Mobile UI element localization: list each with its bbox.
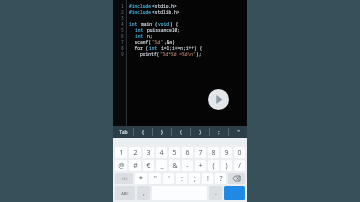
staticText: <stdio.h>: [152, 3, 177, 9]
staticText: 9: [121, 51, 124, 57]
button[interactable]: Backspace: [228, 173, 245, 184]
staticText: ': [168, 174, 170, 184]
button[interactable]: Enter: [224, 186, 245, 200]
staticText: _: [160, 161, 164, 171]
staticText: int: [129, 21, 141, 27]
staticText: #include: [129, 9, 152, 15]
button[interactable]: 1: [115, 147, 127, 158]
staticText: 6: [121, 33, 124, 39]
staticText: 1: [121, 3, 124, 9]
button[interactable]: ?: [215, 173, 226, 184]
staticText: -: [186, 161, 189, 171]
button[interactable]: ": [149, 173, 161, 184]
staticText: scanf(: [129, 39, 152, 45]
button[interactable]: ,: [137, 186, 150, 200]
button[interactable]: (: [172, 126, 190, 138]
staticText: .: [215, 188, 217, 198]
staticText: /: [238, 161, 241, 171]
button[interactable]: &: [169, 160, 180, 171]
button[interactable]: 0: [234, 147, 245, 158]
button[interactable]: :: [176, 173, 187, 184]
button[interactable]: =\<: [115, 173, 133, 184]
staticText: n;: [147, 33, 153, 39]
button[interactable]: 5: [169, 147, 180, 158]
button[interactable]: {: [134, 126, 152, 138]
staticText: Tab: [119, 129, 128, 136]
staticText: ): [199, 129, 201, 136]
button[interactable]: 3: [143, 147, 154, 158]
staticText: ?: [219, 174, 223, 184]
staticText: €: [146, 161, 151, 171]
staticText: {: [142, 129, 144, 136]
button[interactable]: _: [156, 160, 167, 171]
button[interactable]: 8: [208, 147, 219, 158]
staticText: 2: [121, 9, 124, 15]
button[interactable]: ": [229, 126, 247, 138]
button[interactable]: @: [115, 160, 127, 171]
staticText: <stdlib.h>: [152, 9, 180, 15]
staticText: ;: [194, 174, 196, 184]
staticText: ": [154, 174, 157, 184]
staticText: 4: [159, 148, 164, 158]
staticText: 7: [121, 39, 124, 45]
button[interactable]: /: [234, 160, 245, 171]
staticText: for (: [129, 45, 149, 51]
staticText: int: [135, 27, 147, 33]
button[interactable]: ): [221, 160, 232, 171]
button[interactable]: 2: [129, 147, 141, 158]
staticText: }: [161, 129, 163, 136]
staticText: ;: [218, 129, 220, 136]
staticText: void: [158, 21, 170, 27]
button[interactable]: 9: [221, 147, 232, 158]
button[interactable]: }: [153, 126, 171, 138]
button[interactable]: ;: [189, 173, 200, 184]
staticText: ): [225, 161, 228, 171]
staticText: +: [198, 161, 203, 171]
staticText: !: [207, 174, 209, 184]
staticText: 7: [198, 148, 203, 158]
button[interactable]: Tab: [113, 126, 133, 138]
button[interactable]: !: [202, 173, 213, 184]
staticText: #: [133, 161, 138, 171]
staticText: &: [172, 161, 178, 171]
staticText: @: [118, 161, 125, 171]
staticText: 4: [121, 21, 124, 27]
staticText: 5: [172, 148, 177, 158]
button[interactable]: Run: [208, 89, 229, 110]
staticText: 2: [133, 148, 138, 158]
staticText: );: [196, 51, 202, 57]
staticText: "%d": [152, 39, 164, 45]
staticText: ,&n): [164, 39, 176, 45]
staticText: int: [135, 33, 147, 39]
button[interactable]: €: [143, 160, 154, 171]
staticText: (: [180, 129, 182, 136]
button[interactable]: ;: [210, 126, 228, 138]
staticText: =\<: [121, 176, 128, 181]
button[interactable]: +: [195, 160, 206, 171]
button[interactable]: (: [208, 160, 219, 171]
staticText: "%d*%d =%d\n": [160, 51, 196, 57]
staticText: 0: [237, 148, 242, 158]
staticText: i=1;i<=n;i++) {: [161, 45, 203, 51]
staticText: (: [212, 161, 215, 171]
button[interactable]: *: [135, 173, 147, 184]
staticText: printf(: [129, 51, 160, 57]
button[interactable]: ABC: [115, 186, 135, 200]
button[interactable]: ): [191, 126, 209, 138]
button[interactable]: ': [163, 173, 174, 184]
staticText: 8: [121, 45, 124, 51]
button[interactable]: 7: [195, 147, 206, 158]
staticText: ABC: [121, 191, 129, 196]
button[interactable]: 6: [182, 147, 193, 158]
button[interactable]: -: [182, 160, 193, 171]
staticText: 3: [121, 15, 124, 21]
button[interactable]: 4: [156, 147, 167, 158]
staticText: 5: [121, 27, 124, 33]
staticText: ) {: [170, 21, 179, 27]
button[interactable]: .: [209, 186, 222, 200]
staticText: main (: [141, 21, 158, 27]
button[interactable]: #: [129, 160, 141, 171]
